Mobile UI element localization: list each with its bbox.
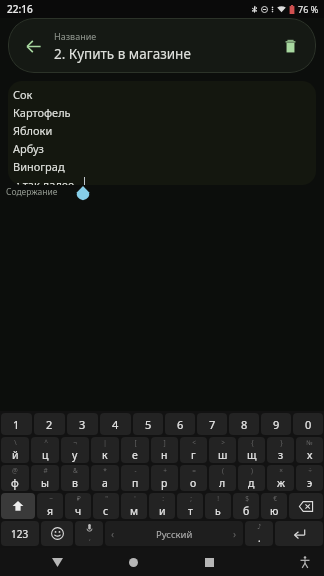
button[interactable]: )	[238, 465, 265, 491]
button[interactable]: (	[209, 465, 236, 491]
button[interactable]: Назад	[43, 548, 71, 576]
staticText: а	[102, 476, 108, 490]
button[interactable]: Удалить символ	[289, 493, 323, 519]
button[interactable]: ÷	[296, 465, 323, 491]
button[interactable]: 0	[293, 413, 323, 435]
button[interactable]: |	[91, 437, 119, 463]
staticText: 2	[46, 417, 53, 432]
button[interactable]: №	[296, 437, 323, 463]
button[interactable]: '	[121, 493, 147, 519]
button[interactable]: @	[1, 465, 29, 491]
button[interactable]: Эмодзи	[41, 521, 73, 546]
button[interactable]: Сок	[8, 81, 316, 185]
button[interactable]: 3	[67, 413, 98, 435]
button[interactable]: 6	[165, 413, 195, 435]
button[interactable]: Обзор	[195, 548, 223, 576]
staticText: 8	[241, 417, 248, 432]
staticText: ]	[163, 438, 166, 447]
button[interactable]: 8	[229, 413, 259, 435]
staticText: п	[132, 476, 139, 490]
staticText: ‹	[111, 527, 115, 541]
button[interactable]: 9	[261, 413, 291, 435]
staticText: &	[73, 466, 78, 475]
staticText: и	[159, 504, 166, 518]
button[interactable]: 1	[1, 413, 32, 435]
button[interactable]: ‹	[105, 521, 243, 546]
button[interactable]: Назад	[16, 29, 50, 63]
staticText: с	[103, 504, 109, 518]
button[interactable]: $	[233, 493, 259, 519]
staticText: ч	[75, 504, 82, 518]
button[interactable]: 4	[100, 413, 131, 435]
staticText: Яблоки	[13, 123, 53, 138]
button[interactable]: ×	[267, 465, 294, 491]
button[interactable]: Голосовой ввод	[75, 521, 103, 546]
staticText: э	[307, 476, 313, 490]
staticText: 123	[11, 527, 29, 541]
button[interactable]: *	[91, 465, 119, 491]
staticText: 5	[145, 417, 152, 432]
staticText: Сок	[13, 87, 33, 102]
button[interactable]: ~	[37, 493, 63, 519]
staticText: й	[12, 448, 19, 462]
staticText: ×	[279, 466, 283, 475]
button[interactable]: "	[93, 493, 119, 519]
staticText: Название	[54, 30, 97, 42]
button[interactable]: €	[261, 493, 287, 519]
staticText: ц	[42, 448, 49, 462]
staticText: Содержание	[6, 186, 58, 198]
button[interactable]: =	[180, 465, 207, 491]
button[interactable]: ;	[177, 493, 203, 519]
button[interactable]: ₽	[65, 493, 91, 519]
button[interactable]: 2	[34, 413, 65, 435]
staticText: [	[134, 438, 137, 447]
button[interactable]: !	[205, 493, 231, 519]
button[interactable]: Shift	[1, 493, 35, 519]
staticText: .	[258, 531, 261, 545]
button[interactable]: {	[238, 437, 265, 463]
staticText: "	[105, 494, 108, 503]
staticText: ~	[49, 494, 53, 503]
staticText: *	[103, 466, 107, 475]
button[interactable]: +	[151, 465, 178, 491]
staticText: Картофель	[13, 105, 71, 120]
button[interactable]: ^	[31, 437, 59, 463]
button[interactable]: }	[267, 437, 294, 463]
staticText: €	[273, 494, 277, 503]
staticText: ÷	[308, 466, 312, 475]
staticText: <	[192, 438, 196, 447]
staticText: -	[134, 466, 137, 475]
button[interactable]: Удалить	[274, 30, 306, 62]
staticText: \	[14, 438, 17, 447]
button[interactable]: ]	[151, 437, 178, 463]
staticText: ₽	[77, 494, 81, 503]
button[interactable]: Специальные возможности	[292, 549, 318, 575]
button[interactable]: <	[180, 437, 207, 463]
button[interactable]: Ввод	[275, 521, 323, 546]
button[interactable]: 7	[197, 413, 227, 435]
button[interactable]: [	[121, 437, 149, 463]
staticText: 0	[305, 417, 312, 432]
staticText: б	[243, 504, 250, 518]
staticText: в	[72, 476, 78, 490]
staticText: ф	[11, 476, 19, 490]
button[interactable]: \	[1, 437, 29, 463]
button[interactable]: 123	[1, 521, 39, 546]
button[interactable]: ¬	[61, 437, 89, 463]
button[interactable]: 5	[133, 413, 163, 435]
button[interactable]: &	[61, 465, 89, 491]
staticText: г	[191, 448, 196, 462]
button[interactable]: :	[149, 493, 175, 519]
staticText: (	[222, 466, 224, 475]
staticText: {	[251, 438, 254, 447]
staticText: о	[190, 476, 197, 490]
staticText: м	[130, 504, 139, 518]
button[interactable]: Главный экран	[119, 548, 147, 576]
staticText: Виноград	[13, 159, 65, 174]
button[interactable]: -	[121, 465, 149, 491]
button[interactable]: Точка	[245, 521, 273, 546]
staticText: $	[245, 494, 249, 503]
button[interactable]: >	[209, 437, 236, 463]
button[interactable]: #	[31, 465, 59, 491]
staticText: т	[188, 504, 193, 518]
